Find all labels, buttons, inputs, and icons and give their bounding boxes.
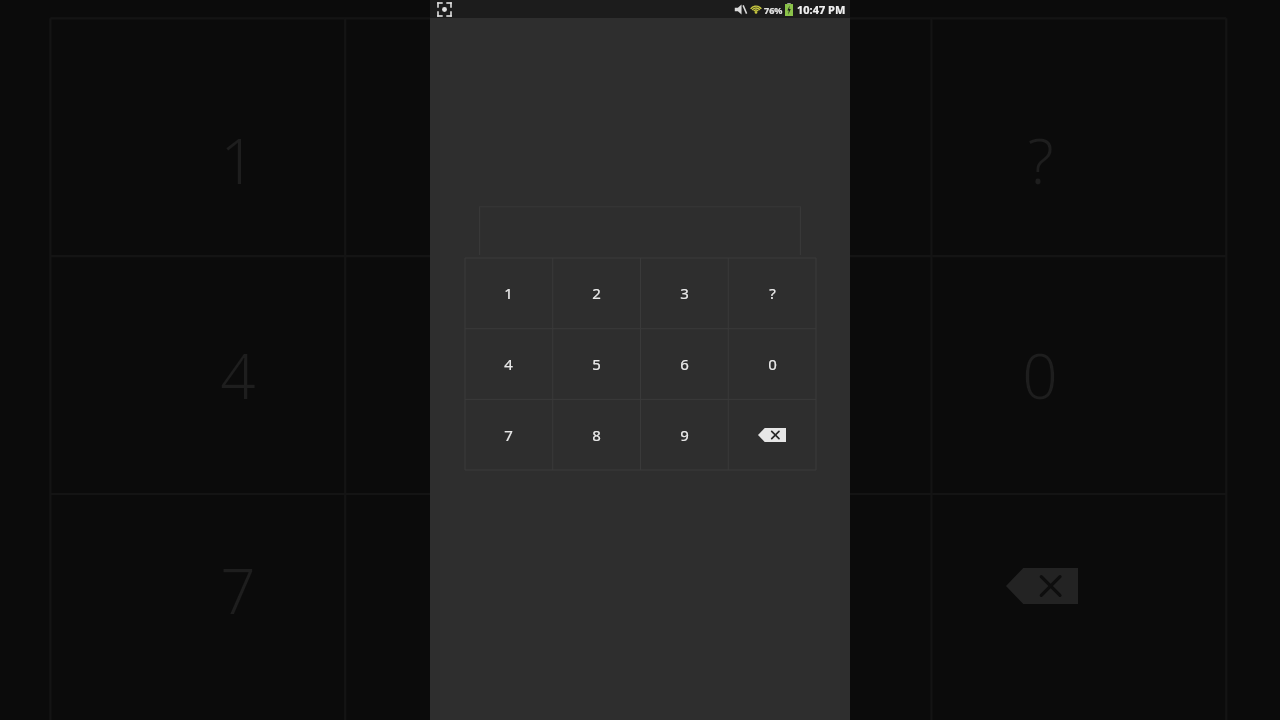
staticText: 7 xyxy=(504,425,513,445)
staticText: 8 xyxy=(592,425,601,445)
button[interactable]: 5 xyxy=(552,328,640,399)
staticText: 1 xyxy=(504,283,513,303)
button[interactable]: 7 xyxy=(465,399,552,470)
button[interactable]: ? xyxy=(728,258,816,328)
button[interactable]: 1 xyxy=(465,258,552,328)
button[interactable]: 0 xyxy=(728,328,816,399)
staticText: ? xyxy=(1027,118,1054,202)
staticText: ? xyxy=(769,283,776,303)
staticText: 76% xyxy=(764,4,783,16)
staticText: 1 xyxy=(220,118,256,202)
button[interactable]: 3 xyxy=(640,258,728,328)
button[interactable]: 6 xyxy=(640,328,728,399)
staticText: 7 xyxy=(220,548,256,632)
staticText: 3 xyxy=(680,283,689,303)
staticText: 4 xyxy=(220,333,256,417)
other: Screenshot xyxy=(438,3,451,16)
staticText: 9 xyxy=(680,425,689,445)
button[interactable]: 8 xyxy=(552,399,640,470)
staticText: 10:47 PM xyxy=(797,2,846,17)
staticText: 0 xyxy=(768,354,777,374)
button[interactable]: 9 xyxy=(640,399,728,470)
button[interactable]: 4 xyxy=(465,328,552,399)
staticText: 2 xyxy=(592,283,601,303)
staticText: 0 xyxy=(1022,333,1058,417)
staticText: 5 xyxy=(592,354,601,374)
staticText: 4 xyxy=(504,354,513,374)
button[interactable]: Backspace xyxy=(728,399,816,470)
staticText: 6 xyxy=(680,354,689,374)
button[interactable]: 2 xyxy=(552,258,640,328)
